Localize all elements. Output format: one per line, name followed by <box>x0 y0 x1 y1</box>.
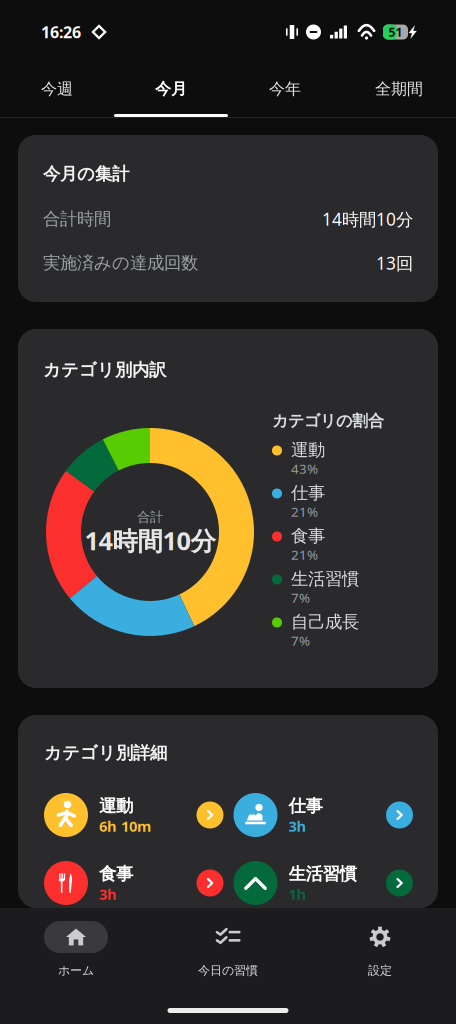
staticText: 今年 <box>269 79 301 99</box>
button[interactable]: ホーム <box>0 921 152 979</box>
staticText: 3h <box>99 884 117 904</box>
staticText: 14時間10分 <box>322 207 413 230</box>
staticText: 運動 <box>291 439 325 461</box>
button[interactable]: 今年 <box>228 64 342 117</box>
button[interactable]: 設定 <box>304 921 456 979</box>
button[interactable]: 仕事 <box>233 793 413 837</box>
staticText: 16:26 <box>41 21 81 43</box>
staticText: 今日の習慣 <box>198 963 258 978</box>
staticText: 設定 <box>368 963 392 978</box>
staticText: 今月の集計 <box>43 163 129 185</box>
staticText: 食事 <box>291 525 325 547</box>
button[interactable]: 運動 <box>44 793 223 837</box>
staticText: ホーム <box>58 963 94 978</box>
staticText: カテゴリ別内訳 <box>43 359 166 381</box>
staticText: 3h <box>288 816 306 836</box>
staticText: 実施済みの達成回数 <box>43 252 198 274</box>
staticText: 13回 <box>376 251 413 274</box>
button[interactable]: 今週 <box>0 64 114 117</box>
button[interactable]: 今日の習慣 <box>152 921 304 979</box>
staticText: 今月 <box>155 79 187 99</box>
staticText: 自己成長 <box>291 611 359 633</box>
button[interactable]: 全期間 <box>342 64 456 117</box>
button[interactable]: 今月 <box>114 64 228 117</box>
staticText: 全期間 <box>375 79 423 99</box>
staticText: 今週 <box>41 79 73 99</box>
staticText: 運動 <box>99 795 133 817</box>
staticText: 51 <box>388 24 402 40</box>
button[interactable]: 食事 <box>44 861 223 905</box>
staticText: 食事 <box>99 863 133 885</box>
staticText: 7% <box>291 589 310 606</box>
staticText: 仕事 <box>288 795 322 817</box>
staticText: 21% <box>291 503 318 520</box>
staticText: 仕事 <box>291 482 325 504</box>
staticText: カテゴリの割合 <box>272 411 384 431</box>
staticText: 6h 10m <box>99 816 151 836</box>
staticText: 21% <box>291 546 318 563</box>
staticText: 14時間10分 <box>84 524 215 557</box>
staticText: 生活習慣 <box>288 863 356 885</box>
staticText: 43% <box>291 460 318 477</box>
staticText: カテゴリ別詳細 <box>44 742 167 764</box>
staticText: 1h <box>288 884 306 904</box>
button[interactable]: 生活習慣 <box>233 861 413 905</box>
staticText: 生活習慣 <box>291 568 359 590</box>
staticText: 7% <box>291 632 310 649</box>
staticText: 合計時間 <box>43 208 111 230</box>
staticText: 合計 <box>137 509 163 525</box>
